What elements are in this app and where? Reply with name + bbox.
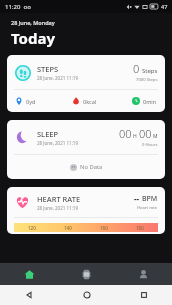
staticText: M: [153, 133, 158, 140]
staticText: 47: [161, 3, 168, 10]
staticText: 160: [100, 225, 108, 231]
staticText: 0yd: [26, 98, 36, 105]
staticText: STEPS: [37, 64, 59, 74]
staticText: 7000 Steps: [136, 77, 158, 83]
staticText: 0kcal: [83, 98, 97, 105]
staticText: --: [134, 193, 140, 204]
staticText: 120: [28, 225, 36, 231]
button[interactable]: Devices: [58, 263, 115, 285]
staticText: HEART RATE: [37, 194, 81, 204]
staticText: 0 Hours: [142, 142, 158, 148]
staticText: 00: [139, 126, 152, 141]
staticText: BPM: [142, 194, 158, 204]
button[interactable]: STEPS: [7, 55, 165, 112]
staticText: 0: [133, 61, 140, 76]
staticText: 28 June, 2021 11:19: [37, 205, 78, 211]
button[interactable]: 0min: [132, 97, 157, 105]
staticText: 28 June, Monday: [11, 19, 55, 26]
button[interactable]: Back: [0, 285, 58, 305]
button[interactable]: Profile: [115, 263, 172, 285]
staticText: Steps: [142, 67, 158, 75]
staticText: 11:20 oo: [5, 3, 31, 11]
button[interactable]: HEART RATE: [7, 187, 165, 234]
staticText: 0min: [143, 98, 157, 105]
staticText: 28 June, 2021 11:19: [37, 140, 78, 146]
staticText: H: [133, 133, 137, 140]
staticText: Heart rate: [137, 205, 158, 211]
staticText: No Data: [80, 163, 103, 171]
button[interactable]: SLEEP: [7, 120, 165, 179]
staticText: SLEEP: [37, 129, 59, 139]
button[interactable]: 0kcal: [72, 97, 97, 105]
button[interactable]: 0yd: [15, 97, 36, 105]
staticText: 28 June, 2021 11:19: [37, 75, 78, 81]
button[interactable]: Recents: [115, 285, 172, 305]
staticText: 140: [64, 225, 72, 231]
staticText: Today: [11, 28, 56, 48]
staticText: 180: [136, 225, 144, 231]
button[interactable]: Home: [58, 285, 115, 305]
button[interactable]: Home: [0, 263, 58, 285]
staticText: 00: [119, 126, 132, 141]
